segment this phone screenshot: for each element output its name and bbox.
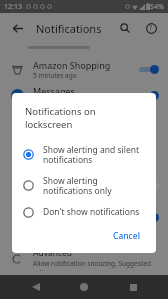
staticText: Notifications [36,21,102,36]
staticText: Sensitive notifications [33,204,126,216]
staticText: ? [149,23,153,33]
button[interactable]: Advanced [0,247,168,271]
button[interactable]: Show alerting and silent notifications [12,139,156,170]
button[interactable]: Help [140,17,162,39]
button[interactable]: Back [23,275,49,299]
staticText: Don't show notifications [43,206,140,218]
staticText: Allow notification snoozing, Suggested a… [33,259,159,271]
staticText: Show alerting and silent notifications [43,144,146,165]
button[interactable]: Search [114,17,136,39]
button[interactable]: Amazon Shopping [0,56,168,82]
button[interactable]: Cancel [107,227,146,245]
staticText: Advanced [33,247,73,259]
staticText: Notifications on lockscreen [25,105,143,131]
button[interactable]: Home [71,275,97,299]
button[interactable]: Sensitive notifications [0,204,168,230]
button[interactable]: Messages [0,82,168,108]
staticText: Messages [33,85,75,97]
staticText: Amazon Shopping [33,59,111,71]
button[interactable]: Back [6,17,28,39]
staticText: Show alerting and silent notifications [33,173,139,197]
button[interactable]: Recents [120,275,146,299]
staticText: Cancel [113,230,140,242]
button[interactable]: Show alerting notifications only [12,170,156,201]
staticText: 5 minutes ago [33,71,77,80]
button[interactable]: Don't show notifications [12,201,156,223]
staticText: 12:13 [4,2,22,12]
staticText: Show alerting notifications only [43,175,146,196]
staticText: 54% [150,2,164,12]
button[interactable]: Show alerting and silent notifications [0,172,168,198]
